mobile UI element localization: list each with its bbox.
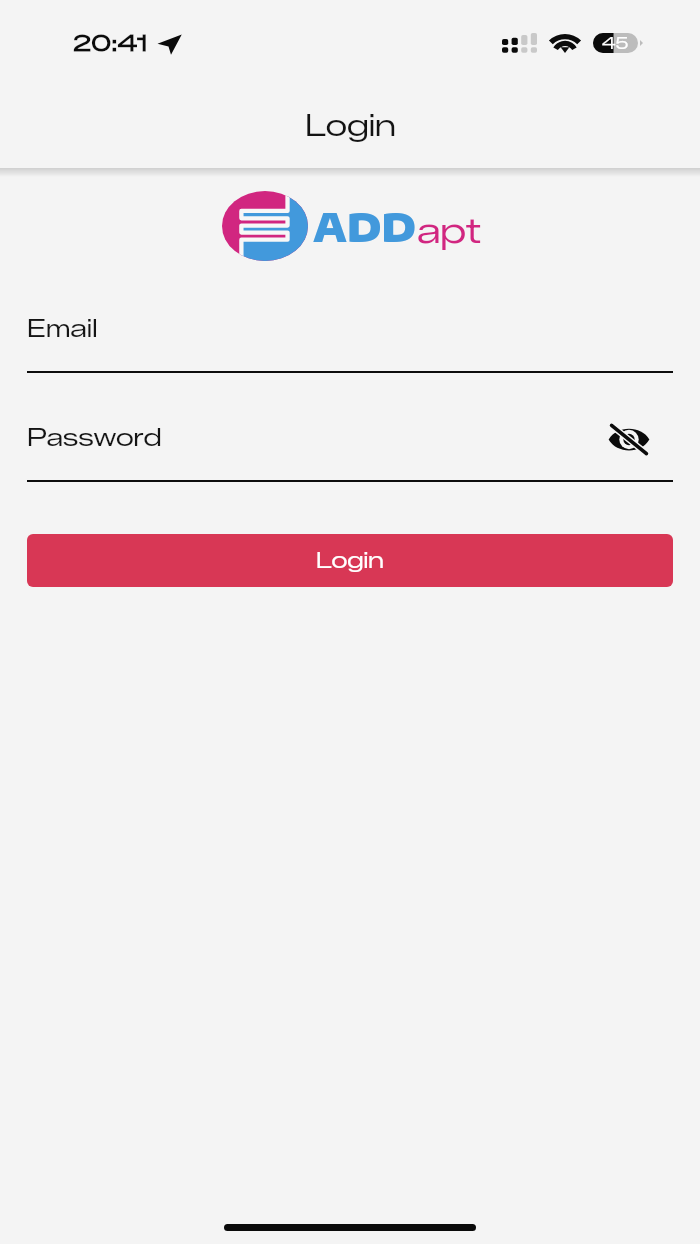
staticText: Login [316,547,384,574]
staticText: Login [305,108,396,144]
button[interactable]: Show password [601,415,657,463]
staticText: 20:41 [73,29,148,57]
button[interactable]: Password [27,415,673,482]
staticText: Password [27,422,162,452]
button[interactable]: Login [27,534,673,587]
staticText: apt [417,209,482,251]
staticText: Email [27,313,98,343]
staticText: ADD [313,202,417,250]
button[interactable]: Email [27,306,673,373]
staticText: 45 [602,34,629,53]
